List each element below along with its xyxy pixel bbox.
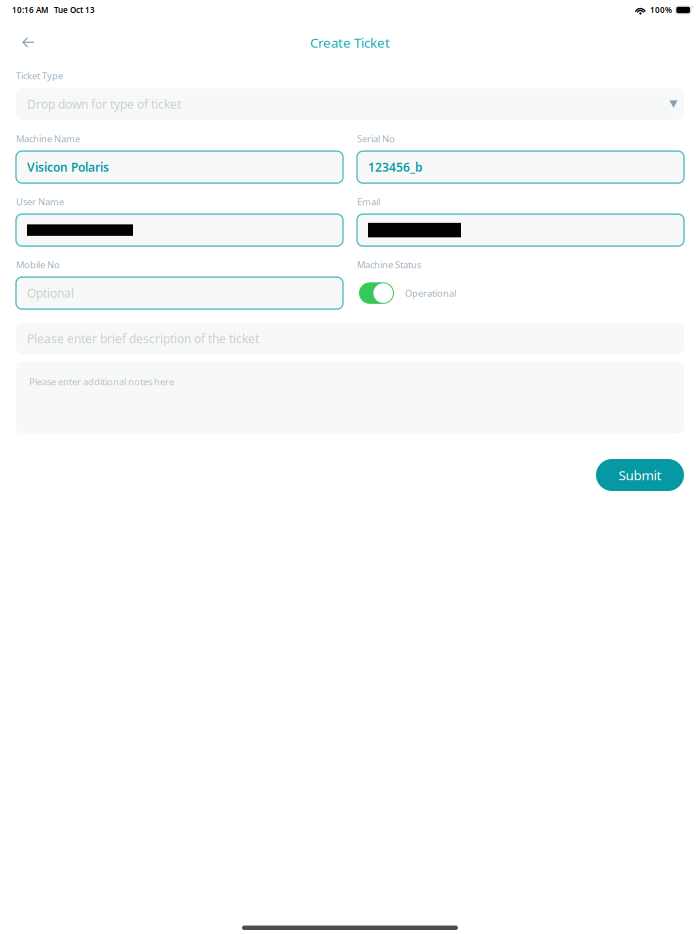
staticText: 123456_b [368,159,423,175]
staticText: Optional [27,285,74,301]
staticText: Please enter brief description of the ti… [27,331,259,346]
staticText: Visicon Polaris [27,159,109,175]
staticText: Create Ticket [310,34,390,51]
staticText: Machine Status [357,258,421,271]
staticText: 10:16 AM [12,5,48,15]
staticText: Please enter additional notes here [29,375,174,388]
staticText: Ticket Type [16,69,63,82]
staticText: Email [357,195,380,208]
staticText: Mobile No [16,258,60,271]
staticText: Machine Name [16,132,80,145]
button[interactable]: Drop down for type of ticket [16,88,684,120]
button[interactable]: Machine status, operational [359,282,394,304]
button[interactable]: Please enter brief description of the ti… [16,323,684,355]
staticText: 100% [650,5,672,15]
staticText: Tue Oct 13 [54,5,95,15]
staticText: Drop down for type of ticket [27,96,181,112]
staticText: Serial No [357,132,395,145]
button[interactable]: Please enter additional notes here [16,361,684,433]
staticText: User Name [16,195,64,208]
button[interactable]: Back [10,25,47,59]
staticText: Submit [618,466,661,484]
staticText: Operational [405,287,456,299]
button[interactable]: Submit [596,459,684,491]
